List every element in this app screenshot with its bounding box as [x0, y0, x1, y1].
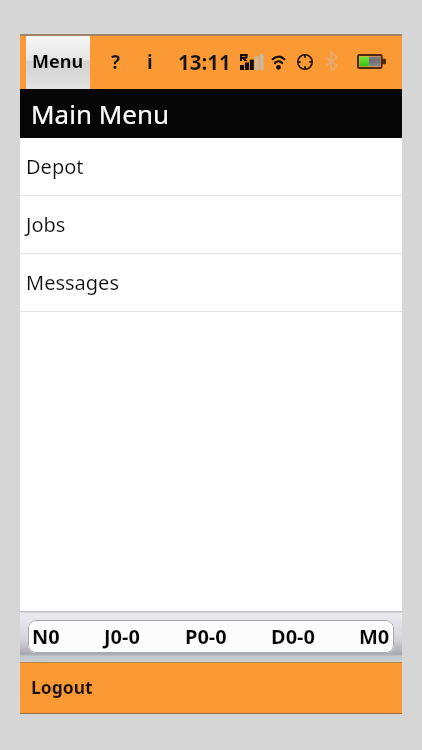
button[interactable]: Messages	[20, 254, 402, 312]
staticText: Logout	[31, 675, 93, 699]
button[interactable]: Help	[105, 47, 127, 77]
other: GPS	[297, 54, 313, 70]
other: Battery	[357, 54, 386, 69]
button[interactable]: Depot	[20, 138, 402, 196]
staticText: Jobs	[26, 211, 66, 238]
staticText: J0-0	[104, 623, 140, 650]
staticText: Menu	[32, 49, 84, 74]
other: Bluetooth	[326, 52, 337, 71]
staticText: ?	[111, 49, 121, 75]
staticText: Messages	[26, 269, 119, 296]
other: Signal strength	[240, 54, 265, 70]
button[interactable]: Logout	[20, 662, 402, 714]
button[interactable]: Jobs	[20, 196, 402, 254]
other: Wi-Fi	[270, 55, 287, 69]
staticText: P0-0	[185, 623, 227, 650]
button[interactable]: N0	[32, 620, 390, 653]
staticText: D0-0	[271, 623, 315, 650]
staticText: 13:11	[178, 48, 231, 76]
button[interactable]: Menu	[26, 35, 90, 89]
staticText: N0	[32, 623, 60, 650]
staticText: Main Menu	[31, 96, 170, 131]
staticText: M0	[359, 623, 390, 650]
button[interactable]: Info	[139, 47, 161, 77]
staticText: i	[147, 49, 153, 75]
staticText: Depot	[26, 153, 84, 180]
